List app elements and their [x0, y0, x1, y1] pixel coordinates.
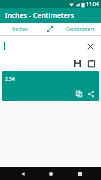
button[interactable]: Recents: [73, 167, 86, 180]
button[interactable]: Share: [86, 89, 96, 99]
staticText: Inches - Centimeters: [5, 11, 75, 21]
staticText: 2.54: [5, 76, 15, 83]
button[interactable]: 2.54: [2, 71, 99, 101]
button[interactable]: Centimeters: [60, 23, 101, 35]
button[interactable]: Home: [44, 167, 57, 180]
button[interactable]: Swap units: [40, 23, 60, 35]
button[interactable]: Inches: [0, 23, 40, 35]
button[interactable]: Save: [72, 58, 83, 69]
button[interactable]: Back: [16, 167, 29, 180]
button[interactable]: Copy: [74, 89, 84, 99]
staticText: 11:04: [86, 1, 99, 8]
staticText: Centimeters: [66, 26, 95, 33]
staticText: Inches: [12, 26, 28, 33]
button[interactable]: Clear: [85, 41, 95, 51]
button[interactable]: Paste: [86, 58, 97, 69]
